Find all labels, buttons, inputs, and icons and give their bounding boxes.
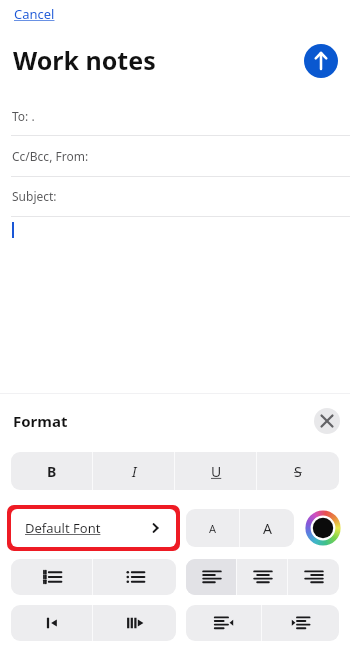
button[interactable]: Strikethrough [257,452,339,490]
staticText: B [47,462,57,481]
staticText: U [211,462,222,481]
button[interactable]: Align left [186,559,237,595]
button[interactable]: Text color [303,508,343,548]
button[interactable]: Increase font size [240,509,294,547]
staticText: To: . [12,108,35,124]
button[interactable]: Align center [237,559,288,595]
button[interactable]: Decrease indent [11,605,93,641]
button[interactable]: Indent text [262,605,339,641]
button[interactable]: To: . [12,108,350,124]
staticText: Subject: [12,188,57,204]
staticText: Default Font [25,519,101,537]
button[interactable]: Bulleted list [93,559,176,595]
staticText: Default Font [25,519,101,537]
staticText: Format [13,411,68,431]
staticText: A [263,519,272,538]
button[interactable]: Decrease font size [186,509,240,547]
button[interactable]: Send [304,44,338,78]
staticText: S [294,462,302,481]
button[interactable]: Close [314,408,340,434]
button[interactable]: Align right [288,559,339,595]
button[interactable]: Italic [93,452,175,490]
button[interactable]: Numbered list [11,559,93,595]
button[interactable]: Default Font [25,509,162,547]
button[interactable]: Underline [175,452,257,490]
staticText: Cc/Bcc, From: [12,148,89,164]
staticText: A [209,521,217,536]
staticText: Work notes [13,43,156,77]
button[interactable]: Cancel [11,2,58,26]
staticText: Cancel [14,5,55,23]
button[interactable]: Default Font [11,509,176,547]
button[interactable]: Bold [11,452,93,490]
button[interactable]: Outdent text [186,605,262,641]
button[interactable]: Cc/Bcc, From: [12,148,350,164]
staticText: I [132,462,137,481]
button[interactable]: Subject: [12,188,350,204]
button[interactable]: Increase indent [93,605,176,641]
